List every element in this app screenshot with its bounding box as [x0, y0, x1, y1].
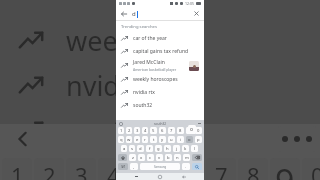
button[interactable]: x [138, 154, 145, 161]
button[interactable]: , [130, 163, 138, 170]
button[interactable]: Back [180, 173, 188, 180]
button[interactable]: c [147, 154, 154, 161]
staticText: 9 [275, 158, 295, 180]
button[interactable]: Home [156, 173, 164, 180]
button[interactable]: e [134, 136, 140, 143]
button[interactable]: Back [119, 9, 128, 18]
staticText: 4 [144, 128, 147, 134]
button[interactable]: g [155, 145, 162, 152]
staticText: 0 [311, 160, 320, 180]
staticText: 9 [188, 128, 191, 134]
staticText: south32 [133, 102, 153, 109]
button[interactable]: 8 [238, 158, 268, 180]
button[interactable]: w [126, 136, 132, 143]
staticText: l [194, 146, 196, 152]
staticText: 3 [75, 160, 88, 180]
button[interactable]: 4 [142, 127, 148, 134]
button[interactable]: 4 [98, 158, 128, 180]
button[interactable]: t [150, 136, 157, 143]
staticText: w [127, 137, 131, 143]
button[interactable]: l [191, 145, 198, 152]
button[interactable]: p [195, 136, 202, 143]
button[interactable]: n [174, 154, 181, 161]
button[interactable]: 1 [118, 127, 124, 134]
button[interactable]: nvidia rtx [116, 86, 204, 99]
button[interactable]: a [121, 145, 127, 152]
staticText: g [157, 146, 160, 152]
button[interactable]: j [173, 145, 180, 152]
button[interactable]: 7 [168, 127, 175, 134]
button[interactable]: Recents [132, 173, 140, 180]
button[interactable]: 8 [177, 127, 184, 134]
button[interactable]: f [146, 145, 153, 152]
staticText: Samsung [154, 165, 167, 169]
button[interactable]: 5 [150, 127, 157, 134]
staticText: p [197, 137, 200, 143]
button[interactable]: Shift [118, 154, 127, 161]
button[interactable]: q [118, 136, 124, 143]
button[interactable]: h [164, 145, 171, 152]
staticText: x [140, 155, 143, 161]
button[interactable]: 3 [66, 158, 96, 180]
button[interactable]: Samsung [140, 163, 180, 170]
button[interactable]: Search [192, 163, 202, 170]
staticText: south32 [154, 122, 167, 126]
staticText: car of the year [133, 35, 167, 42]
staticText: t [153, 137, 155, 143]
button[interactable]: r [142, 136, 148, 143]
staticText: d [132, 10, 136, 18]
staticText: b [167, 155, 170, 161]
button[interactable]: 2 [34, 158, 64, 180]
staticText: o [188, 137, 191, 143]
staticText: 7 [215, 160, 228, 180]
button[interactable]: o [186, 136, 193, 143]
button[interactable]: 9 [186, 127, 193, 134]
staticText: f [149, 146, 151, 152]
button[interactable]: 0 [302, 158, 320, 180]
staticText: k [184, 146, 187, 152]
button[interactable]: Symbols [118, 163, 128, 170]
button[interactable]: car of the year [116, 32, 204, 45]
button[interactable]: 1 [2, 158, 32, 180]
staticText: 2 [128, 128, 131, 134]
button[interactable]: 9 [270, 158, 300, 180]
button[interactable]: Backspace [192, 154, 202, 161]
button[interactable]: capital gains tax refund [116, 45, 204, 58]
staticText: 8 [247, 160, 260, 180]
button[interactable]: south32 [116, 99, 204, 112]
button[interactable]: d [137, 145, 144, 152]
staticText: c [149, 155, 152, 161]
button[interactable]: . [182, 163, 190, 170]
button[interactable]: 6 [159, 127, 166, 134]
staticText: m [185, 155, 189, 161]
button[interactable]: m [183, 154, 190, 161]
button[interactable]: u [168, 136, 175, 143]
button[interactable]: 2 [126, 127, 132, 134]
button[interactable]: i [177, 136, 184, 143]
staticText: weekly horoscopes [133, 76, 178, 83]
staticText: v [158, 155, 161, 161]
staticText: Jared McClain [133, 59, 165, 66]
staticText: a [123, 146, 126, 152]
button[interactable]: weekly horoscopes [116, 73, 204, 86]
staticText: capital gains tax refund [133, 48, 189, 55]
staticText: s [131, 146, 134, 152]
button[interactable]: Jared McClain [116, 58, 204, 73]
button[interactable]: 0 [195, 127, 202, 134]
button[interactable]: z [129, 154, 136, 161]
staticText: nvidia rtx [133, 89, 155, 96]
staticText: 5 [152, 128, 155, 134]
staticText: 4 [107, 160, 120, 180]
staticText: 8 [179, 128, 182, 134]
staticText: !#1 [121, 165, 126, 169]
button[interactable]: Clear search [192, 9, 201, 18]
button[interactable]: y [159, 136, 166, 143]
button[interactable]: v [156, 154, 163, 161]
staticText: e [136, 137, 139, 143]
button[interactable]: b [165, 154, 172, 161]
button[interactable]: 7 [206, 158, 236, 180]
button[interactable]: k [182, 145, 189, 152]
staticText: h [166, 146, 169, 152]
button[interactable]: 3 [134, 127, 140, 134]
button[interactable]: s [129, 145, 135, 152]
